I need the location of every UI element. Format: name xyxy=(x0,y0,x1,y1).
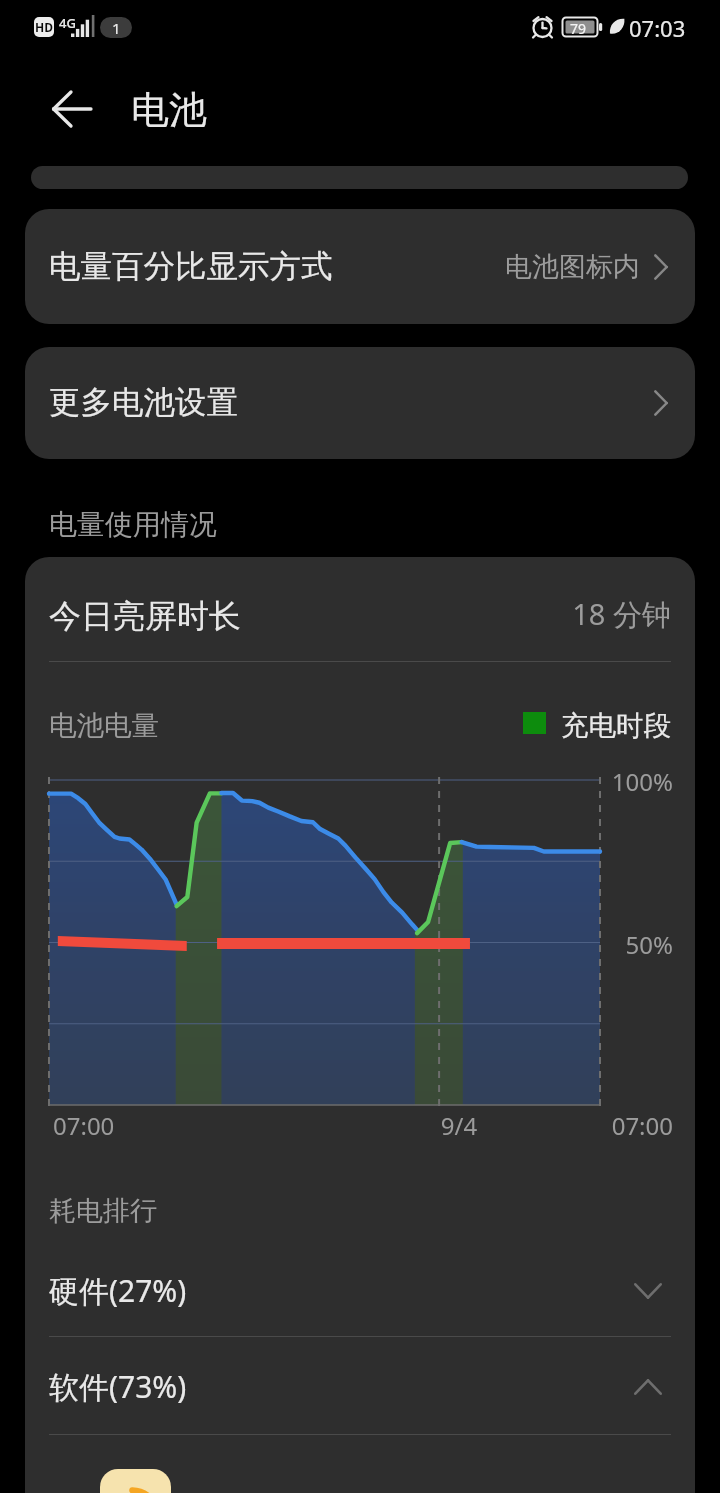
staticText: 07:00 xyxy=(553,1109,673,1142)
staticText: 电量百分比显示方式 xyxy=(49,247,333,287)
staticText: 硬件(27%) xyxy=(49,1270,187,1311)
staticText: 9/4 xyxy=(428,1109,490,1142)
staticText: 更多电池设置 xyxy=(49,383,238,423)
staticText: 1 xyxy=(112,18,121,38)
staticText: 07:03 xyxy=(629,13,686,43)
button[interactable]: 电量百分比显示方式 xyxy=(25,209,695,324)
button[interactable]: 更多电池设置 xyxy=(25,347,695,459)
button[interactable]: Back xyxy=(43,80,101,138)
staticText: 电池图标内 xyxy=(505,250,640,284)
staticText: 4G xyxy=(59,14,76,32)
staticText: 电池 xyxy=(131,86,207,134)
staticText: 07:00 xyxy=(53,1109,115,1142)
staticText: 耗电排行 xyxy=(49,1194,157,1228)
staticText: HD xyxy=(35,19,53,35)
staticText: 今日亮屏时长 xyxy=(49,596,241,636)
staticText: 软件(73%) xyxy=(49,1366,187,1407)
staticText: 79 xyxy=(570,19,587,38)
staticText: 18 分钟 xyxy=(545,594,671,634)
button[interactable]: 硬件(27%) xyxy=(25,1260,695,1321)
staticText: 50% xyxy=(553,928,673,961)
staticText: 电池电量 xyxy=(49,709,159,744)
staticText: 100% xyxy=(553,765,673,798)
staticText: 充电时段 xyxy=(561,709,671,744)
button[interactable]: 软件(73%) xyxy=(25,1356,695,1417)
button[interactable] xyxy=(31,166,688,189)
staticText: 电量使用情况 xyxy=(49,507,217,542)
